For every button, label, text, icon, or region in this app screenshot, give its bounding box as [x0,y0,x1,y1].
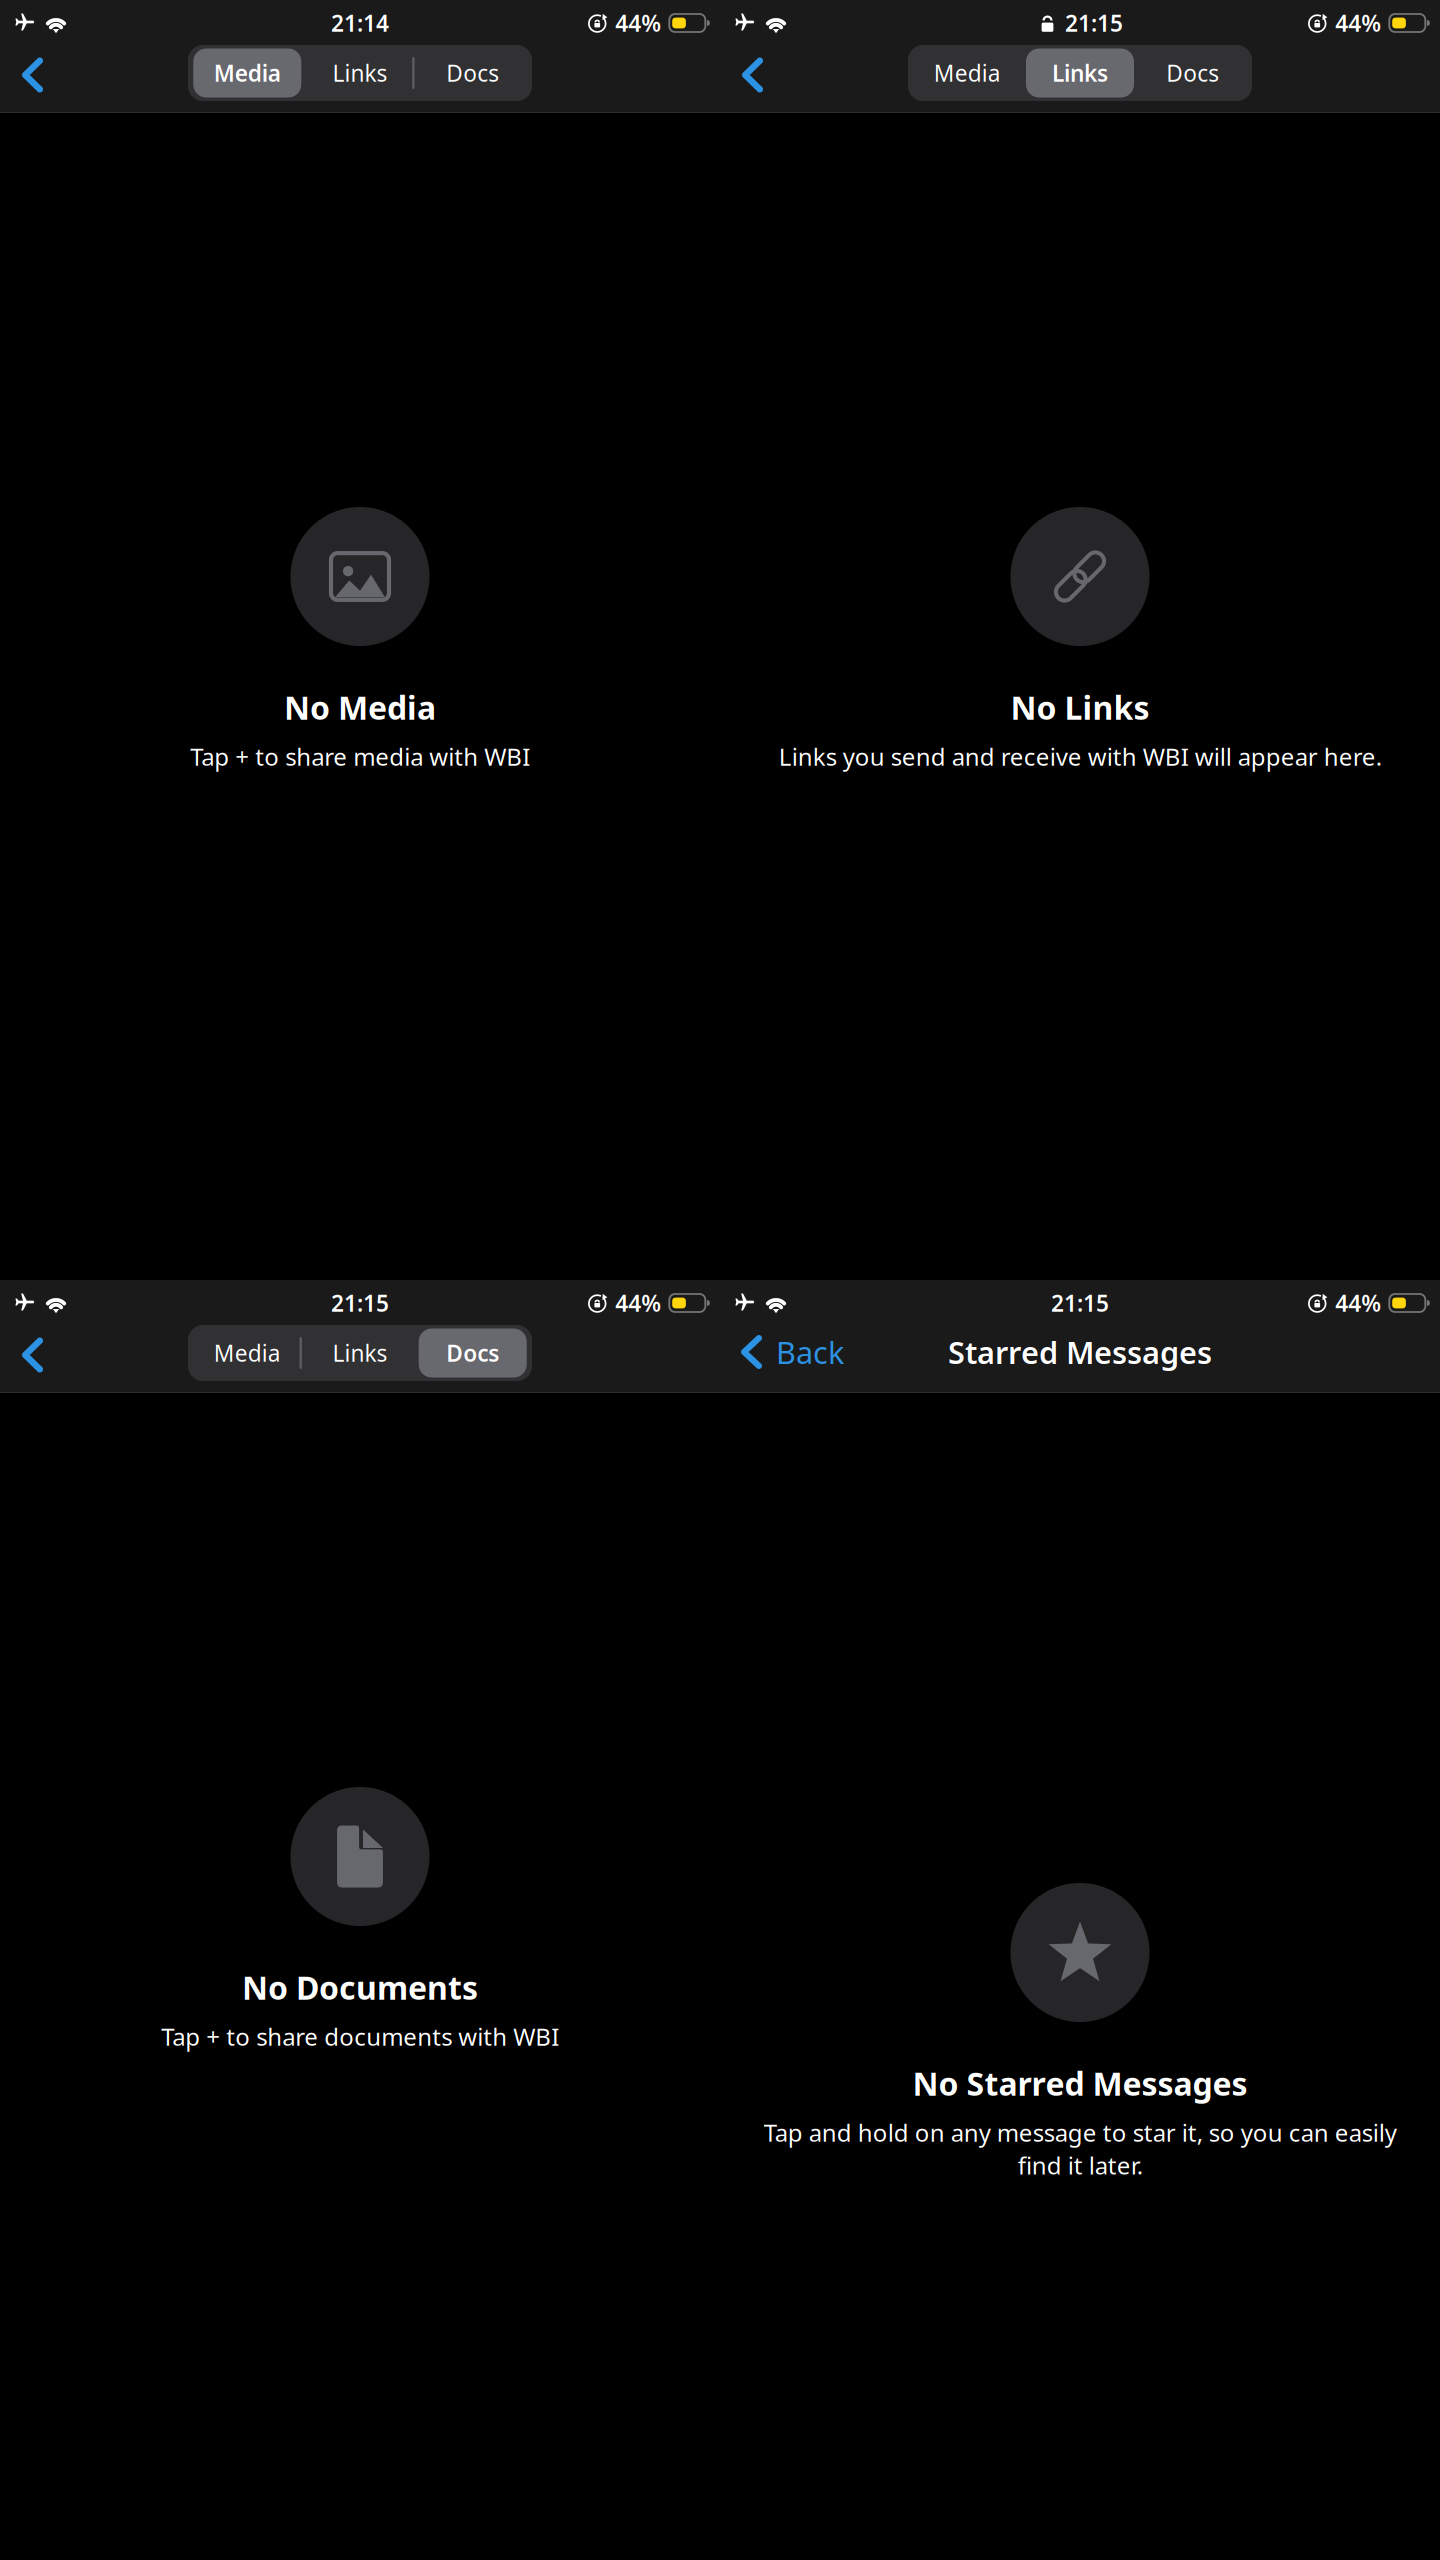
staticText: Media [214,58,281,88]
button[interactable]: Docs [416,1325,529,1381]
staticText: Media [214,1338,281,1368]
button[interactable]: Links [1024,45,1136,101]
staticText: Links [332,58,387,88]
staticText: 21:15 [1065,8,1123,38]
staticText: 21:15 [331,1288,389,1318]
staticText: No Links [1010,686,1149,728]
button[interactable]: Back [720,1326,860,1392]
staticText: Links [1052,58,1108,88]
staticText: 44% [1335,1288,1381,1318]
button[interactable]: Docs [1136,45,1249,101]
staticText: 21:14 [331,8,389,38]
button[interactable]: Back [0,46,65,112]
staticText: 44% [615,8,661,38]
staticText: No Starred Messages [912,2062,1247,2104]
staticText: No Documents [242,1966,478,2008]
staticText: Links [332,1338,387,1368]
button[interactable]: Back [720,46,785,112]
staticText: Tap and hold on any message to star it, … [763,2116,1396,2181]
staticText: 44% [1335,8,1381,38]
button[interactable]: Docs [416,45,529,101]
staticText: 44% [615,1288,661,1318]
button[interactable]: Links [304,45,416,101]
staticText: Starred Messages [948,1332,1212,1372]
staticText: Tap + to share media with WBI [190,740,530,772]
staticText: Docs [446,1338,499,1368]
button[interactable]: Back [0,1326,65,1392]
staticText: Links you send and receive with WBI will… [778,740,1381,772]
button[interactable]: Media [191,1325,304,1381]
button[interactable]: Links [304,1325,416,1381]
staticText: No Media [284,686,436,728]
staticText: Back [776,1332,844,1372]
staticText: Docs [446,58,499,88]
staticText: Docs [1166,58,1219,88]
staticText: Media [934,58,1001,88]
staticText: Tap + to share documents with WBI [161,2020,559,2052]
button[interactable]: Media [911,45,1024,101]
staticText: 21:15 [1051,1288,1109,1318]
button[interactable]: Media [191,45,304,101]
